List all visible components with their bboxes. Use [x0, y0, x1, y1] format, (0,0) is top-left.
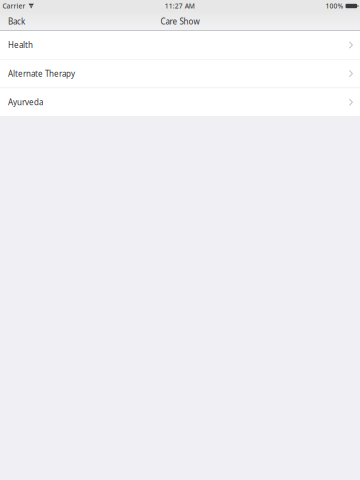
staticText: Alternate Therapy — [8, 68, 75, 79]
staticText: Care Show — [160, 16, 199, 27]
staticText: Carrier — [2, 2, 25, 10]
staticText: Ayurveda — [8, 97, 43, 107]
button[interactable]: Ayurveda — [0, 88, 360, 116]
button[interactable]: Health — [0, 31, 360, 59]
staticText: 11:27 AM — [165, 2, 195, 10]
button[interactable]: Back — [0, 12, 34, 31]
staticText: Health — [8, 40, 33, 50]
staticText: 100% — [325, 2, 343, 10]
staticText: Back — [8, 16, 25, 27]
button[interactable]: Alternate Therapy — [0, 60, 360, 88]
